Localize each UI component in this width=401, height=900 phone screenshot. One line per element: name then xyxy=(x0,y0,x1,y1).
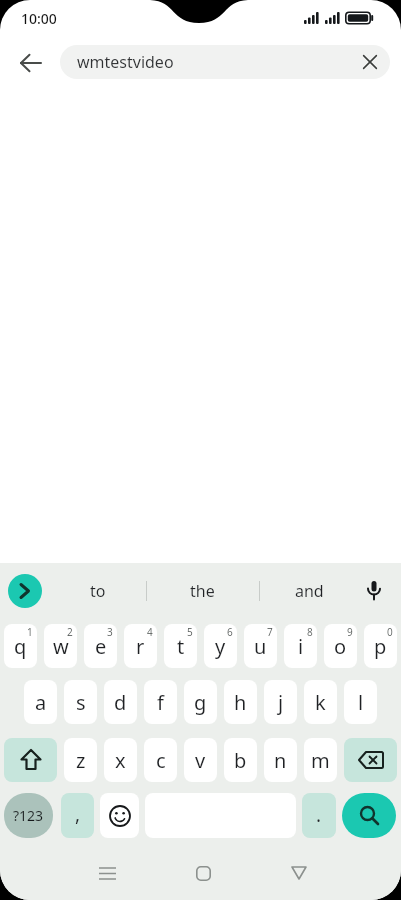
staticText: x xyxy=(115,747,126,774)
staticText: the xyxy=(190,580,215,602)
button[interactable]: the xyxy=(152,569,252,613)
staticText: s xyxy=(76,689,86,716)
staticText: j xyxy=(278,689,284,716)
button[interactable]: u xyxy=(244,624,277,668)
staticText: m xyxy=(311,747,330,774)
staticText: f xyxy=(157,689,164,716)
button[interactable]: g xyxy=(184,680,217,724)
button[interactable]: wmtestvideo xyxy=(60,45,390,79)
staticText: h xyxy=(234,689,247,716)
staticText: 10:00 xyxy=(21,9,57,28)
staticText: , xyxy=(75,801,81,827)
staticText: e xyxy=(95,633,107,660)
staticText: 6 xyxy=(227,625,233,639)
button[interactable]: l xyxy=(344,680,377,724)
button[interactable]: v xyxy=(184,738,217,782)
button[interactable] xyxy=(358,575,390,607)
staticText: 0 xyxy=(387,625,393,639)
staticText: 7 xyxy=(267,625,273,639)
button[interactable] xyxy=(342,793,396,838)
button[interactable]: y xyxy=(204,624,237,668)
button[interactable]: e xyxy=(84,624,117,668)
button[interactable]: x xyxy=(104,738,137,782)
button[interactable]: o xyxy=(324,624,357,668)
staticText: and xyxy=(295,580,324,602)
button[interactable]: to xyxy=(56,569,140,613)
button[interactable]: k xyxy=(304,680,337,724)
button[interactable] xyxy=(187,858,219,888)
button[interactable]: m xyxy=(304,738,337,782)
button[interactable]: q xyxy=(4,624,37,668)
staticText: 4 xyxy=(147,625,153,639)
staticText: ?123 xyxy=(13,806,44,825)
staticText: 8 xyxy=(307,625,313,639)
staticText: 9 xyxy=(347,625,353,639)
staticText: q xyxy=(14,633,27,660)
staticText: t xyxy=(177,633,185,660)
staticText: b xyxy=(234,747,247,774)
button[interactable] xyxy=(100,793,139,838)
button[interactable] xyxy=(283,858,315,888)
button[interactable]: and xyxy=(266,569,352,613)
button[interactable] xyxy=(4,738,57,782)
button[interactable]: h xyxy=(224,680,257,724)
button[interactable]: n xyxy=(264,738,297,782)
button[interactable]: p xyxy=(364,624,397,668)
staticText: g xyxy=(194,689,207,716)
staticText: wmtestvideo xyxy=(77,51,174,73)
staticText: d xyxy=(114,689,127,716)
staticText: a xyxy=(35,689,47,716)
button[interactable]: . xyxy=(302,793,336,838)
staticText: 1 xyxy=(27,625,33,639)
staticText: n xyxy=(274,747,287,774)
staticText: to xyxy=(90,580,106,602)
button[interactable]: , xyxy=(61,793,94,838)
button[interactable]: z xyxy=(64,738,97,782)
staticText: . xyxy=(316,802,322,828)
staticText: y xyxy=(215,633,226,660)
button[interactable]: ?123 xyxy=(4,793,53,838)
staticText: w xyxy=(53,633,69,660)
button[interactable]: f xyxy=(144,680,177,724)
staticText: 5 xyxy=(187,625,193,639)
staticText: r xyxy=(136,633,145,660)
staticText: o xyxy=(334,633,347,660)
staticText: k xyxy=(315,689,326,716)
button[interactable]: a xyxy=(24,680,57,724)
staticText: z xyxy=(76,747,86,774)
button[interactable]: w xyxy=(44,624,77,668)
staticText: 2 xyxy=(67,625,73,639)
staticText: i xyxy=(298,633,304,660)
button[interactable]: s xyxy=(64,680,97,724)
button[interactable]: b xyxy=(224,738,257,782)
button[interactable]: r xyxy=(124,624,157,668)
staticText: 3 xyxy=(107,625,113,639)
button[interactable] xyxy=(91,858,123,888)
button[interactable]: j xyxy=(264,680,297,724)
button[interactable]: t xyxy=(164,624,197,668)
button[interactable] xyxy=(8,574,42,608)
button[interactable] xyxy=(12,44,50,82)
button[interactable]: c xyxy=(144,738,177,782)
staticText: p xyxy=(374,633,387,660)
staticText: c xyxy=(156,747,166,774)
staticText: l xyxy=(358,689,364,716)
staticText: u xyxy=(254,633,267,660)
button[interactable]: d xyxy=(104,680,137,724)
staticText: v xyxy=(195,747,206,774)
button[interactable]: i xyxy=(284,624,317,668)
button[interactable] xyxy=(344,738,397,782)
